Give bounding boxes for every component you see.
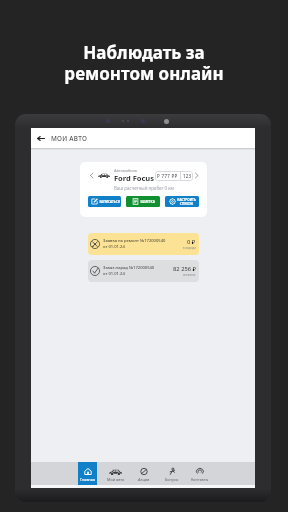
staticText: в очереди <box>183 246 196 250</box>
button[interactable]: Контакты <box>185 462 213 485</box>
staticText: 82 256 ₽ <box>173 265 196 273</box>
staticText: Бонусы <box>165 477 179 482</box>
staticText: МОИ АВТО <box>51 134 88 143</box>
staticText: 0 ₽ <box>187 238 196 246</box>
staticText: ЗАПИСАТЬСЯ <box>99 200 120 204</box>
staticText: Мой авто <box>107 477 125 482</box>
staticText: ЗАМЕТКА <box>140 200 155 204</box>
button[interactable]: Главная <box>73 462 101 485</box>
button[interactable]: Back <box>34 132 47 145</box>
staticText: Автомобиль <box>114 168 138 173</box>
staticText: Р 777 РР <box>157 173 178 179</box>
staticText: Контакты <box>191 477 209 482</box>
button[interactable]: Акции <box>129 462 157 485</box>
staticText: Главная <box>80 477 95 482</box>
staticText: оплачено <box>183 273 196 277</box>
staticText: Заказ-наряд №172000540 <box>103 265 155 271</box>
button[interactable]: НАСТРОИТЬ СПИСОК <box>165 196 199 207</box>
button[interactable]: ЗАМЕТКА <box>126 196 160 207</box>
staticText: Акции <box>138 477 150 482</box>
staticText: НАСТРОИТЬ СПИСОК <box>177 198 196 206</box>
staticText: Заявка на ремонт №172000540 <box>103 238 166 244</box>
button[interactable]: Бонусы <box>157 462 185 485</box>
button[interactable]: Заявка на ремонт №172000540 <box>88 233 199 255</box>
staticText: Ford Focus <box>114 173 155 183</box>
button[interactable]: Мой авто <box>101 462 129 485</box>
button[interactable]: Next car <box>194 172 199 179</box>
staticText: Наблюдать за ремонтом онлайн <box>64 41 224 85</box>
staticText: от 01.01.24 <box>103 271 125 277</box>
button[interactable]: ЗАПИСАТЬСЯ <box>88 196 121 207</box>
button[interactable]: Заказ-наряд №172000540 <box>88 260 199 282</box>
staticText: Ваш расчетный пробег 0 км <box>114 185 174 191</box>
staticText: от 01.01.24 <box>103 244 125 250</box>
button[interactable]: Previous car <box>88 172 95 179</box>
staticText: 123 <box>183 173 192 179</box>
